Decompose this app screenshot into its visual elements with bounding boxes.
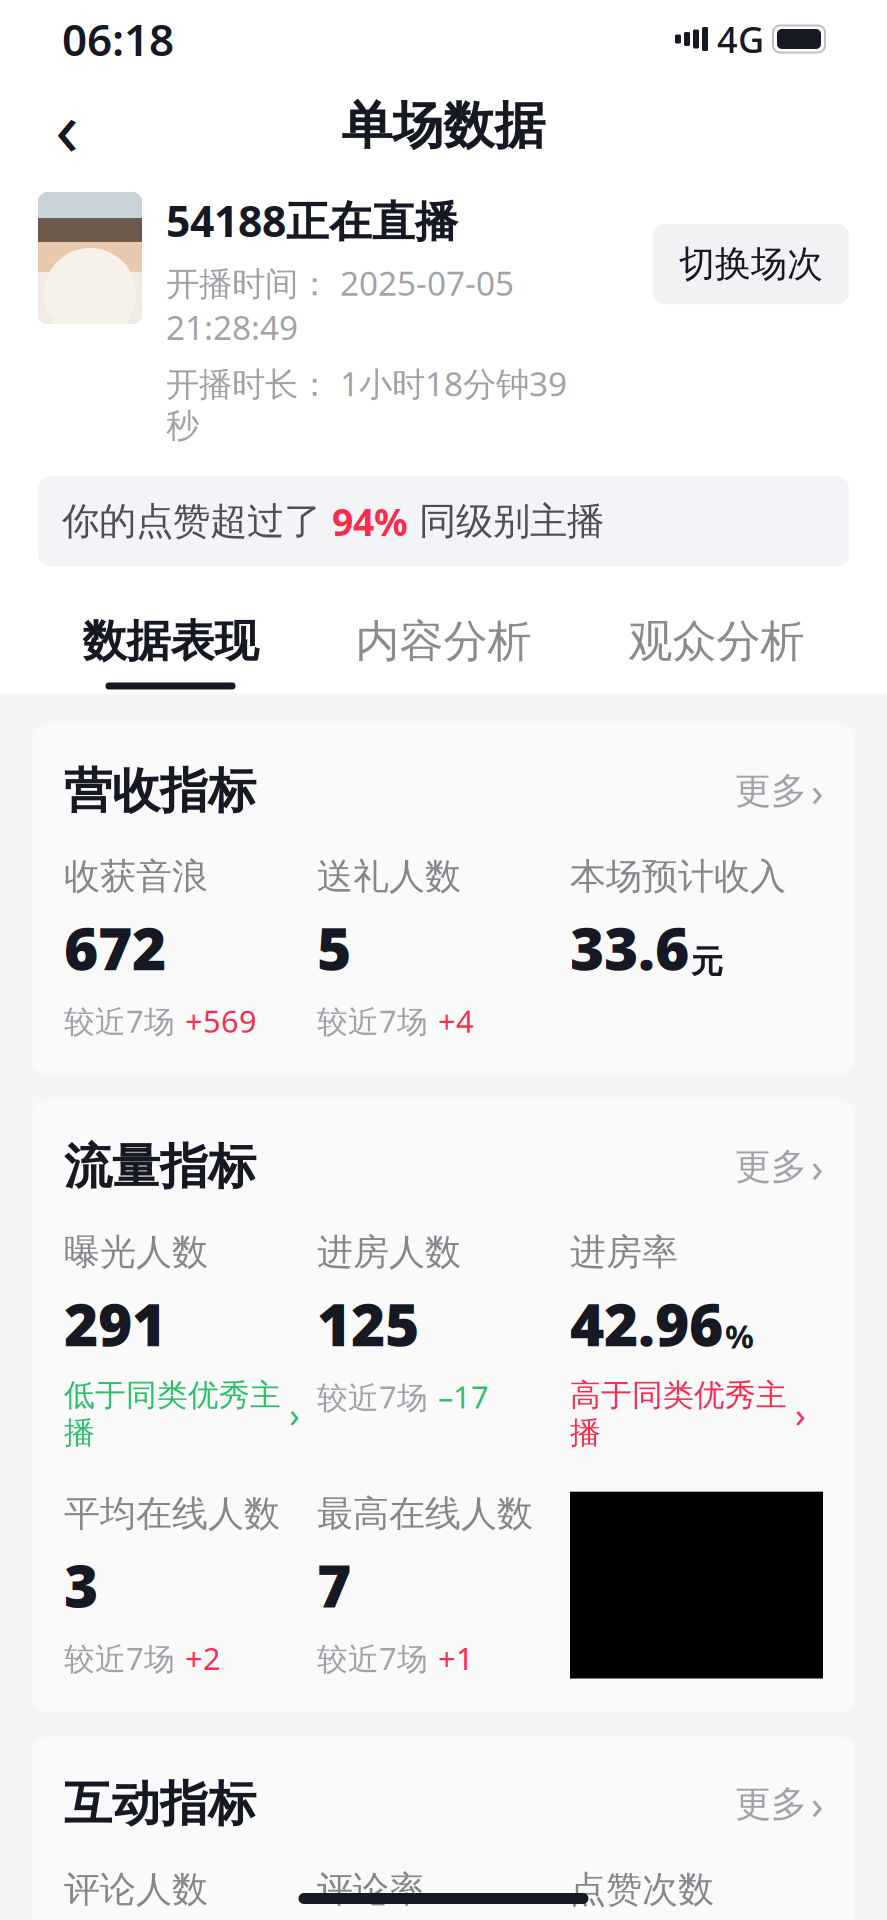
staticText: 曝光人数 (64, 1230, 208, 1274)
staticText: 较近7场 (64, 1000, 175, 1041)
staticText: › (795, 1391, 806, 1437)
staticText: 7 (317, 1546, 351, 1624)
button[interactable]: 内容分析 (307, 614, 580, 689)
staticText: 营收指标 (64, 761, 256, 820)
staticText: 低于同类优秀主播 (64, 1376, 281, 1452)
staticText: › (811, 1140, 823, 1193)
staticText: 收获音浪 (64, 854, 208, 899)
button[interactable]: 返回 (28, 87, 106, 165)
staticText: +4 (438, 1000, 474, 1041)
staticText: 更多 (735, 1145, 807, 1189)
staticText: 较近7场 (317, 1376, 428, 1417)
staticText: 单场数据 (341, 95, 545, 157)
staticText: +1 (438, 1638, 474, 1678)
staticText: 94% (332, 497, 408, 546)
staticText: 高于同类优秀主播 (570, 1376, 787, 1452)
staticText: –17 (438, 1376, 489, 1417)
staticText: 数据表现 (82, 614, 258, 668)
staticText: 更多 (735, 769, 807, 813)
staticText: 开播时间： 2025-07-05 21:28:49 (166, 261, 514, 349)
staticText: 672 (64, 909, 166, 986)
staticText: › (811, 1777, 823, 1830)
staticText: 进房率 (570, 1230, 678, 1274)
staticText: 开播时长： 1小时18分钟39秒 (166, 361, 567, 446)
staticText: ‹ (55, 75, 79, 177)
staticText: 本场预计收入 (570, 854, 786, 899)
staticText: › (289, 1391, 300, 1437)
button[interactable]: 数据表现 (34, 614, 307, 689)
staticText: 5 (317, 909, 351, 986)
staticText: 进房人数 (317, 1230, 461, 1274)
staticText: 你的点赞超过了 (62, 498, 332, 544)
staticText: % (725, 1315, 754, 1357)
staticText: 更多 (735, 1782, 807, 1826)
button[interactable]: 切换场次 (653, 224, 849, 304)
staticText: 06:18 (62, 10, 174, 68)
staticText: 同级别主播 (408, 498, 604, 544)
staticText: 送礼人数 (317, 854, 461, 899)
staticText: 评论率 (317, 1867, 425, 1912)
staticText: › (811, 764, 823, 817)
staticText: 点赞次数 (570, 1867, 714, 1912)
staticText: 54188正在直播 (166, 192, 458, 249)
staticText: 互动指标 (64, 1774, 256, 1833)
staticText: 291 (64, 1284, 166, 1362)
button[interactable]: 更多 (735, 764, 823, 817)
staticText: 较近7场 (317, 1638, 428, 1678)
staticText: 观众分析 (628, 614, 804, 668)
staticText: 42.96 (570, 1284, 723, 1362)
staticText: 切换场次 (679, 242, 823, 286)
staticText: 最高在线人数 (317, 1492, 533, 1536)
staticText: 内容分析 (355, 614, 531, 668)
staticText: 125 (317, 1284, 419, 1362)
button[interactable]: 更多 (735, 1777, 823, 1830)
staticText: 评论人数 (64, 1867, 208, 1912)
button[interactable]: 观众分析 (580, 614, 853, 689)
button[interactable]: 更多 (735, 1140, 823, 1193)
staticText: +569 (185, 1000, 257, 1041)
staticText: 3 (64, 1546, 98, 1624)
staticText: 较近7场 (64, 1638, 175, 1678)
staticText: 元 (691, 942, 723, 981)
staticText: 4G (717, 15, 764, 63)
staticText: +2 (185, 1638, 221, 1678)
staticText: 较近7场 (317, 1000, 428, 1041)
staticText: 平均在线人数 (64, 1492, 280, 1536)
staticText: 33.6 (570, 909, 689, 986)
staticText: 流量指标 (64, 1137, 256, 1196)
